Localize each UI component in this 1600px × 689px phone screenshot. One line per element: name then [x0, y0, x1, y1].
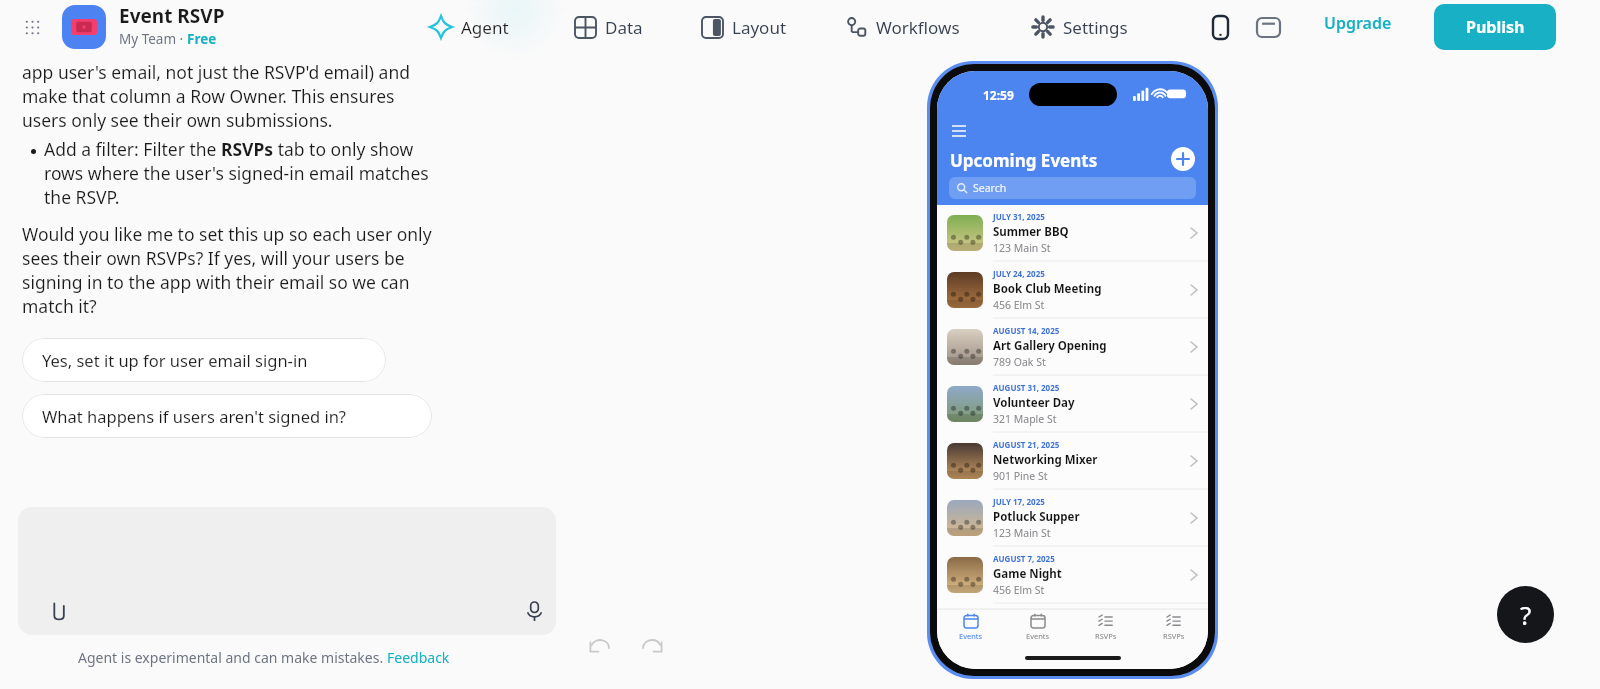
- staticText: 12:59: [983, 87, 1014, 103]
- staticText: AUGUST 7, 2025: [993, 553, 1055, 564]
- staticText: make that column a Row Owner. This ensur…: [22, 84, 395, 108]
- staticText: sees their own RSVPs? If yes, will your …: [22, 246, 405, 270]
- staticText: app user's email, not just the RSVP'd em…: [22, 60, 411, 84]
- button[interactable]: Phone preview: [1203, 10, 1237, 44]
- button[interactable]: Feedback: [387, 648, 450, 667]
- staticText: RSVPs: [1163, 631, 1185, 641]
- button[interactable]: Workflows: [840, 6, 966, 48]
- button[interactable]: JULY 24, 2025: [937, 262, 1208, 319]
- staticText: Agent: [461, 16, 509, 39]
- staticText: Upcoming Events: [950, 149, 1098, 172]
- staticText: Layout: [732, 16, 787, 39]
- staticText: Game Night: [993, 566, 1062, 582]
- staticText: Free: [187, 30, 217, 48]
- button[interactable]: Agent: [424, 6, 515, 48]
- staticText: Yes, set it up for user email sign-in: [42, 349, 308, 371]
- staticText: 901 Pine St: [993, 469, 1048, 483]
- button[interactable]: Apps: [16, 11, 48, 43]
- staticText: Agent is experimental and can make mista…: [78, 648, 387, 667]
- staticText: AUGUST 31, 2025: [993, 382, 1060, 393]
- button[interactable]: Voice input: [518, 595, 550, 627]
- staticText: rows where the user's signed-in email ma…: [44, 161, 429, 185]
- staticText: Events: [1026, 631, 1050, 641]
- staticText: AUGUST 21, 2025: [993, 439, 1060, 450]
- button[interactable]: RSVPs: [1140, 613, 1208, 641]
- staticText: match it?: [22, 294, 97, 318]
- staticText: Art Gallery Opening: [993, 338, 1107, 354]
- button[interactable]: Undo: [582, 628, 618, 664]
- button[interactable]: What happens if users aren't signed in?: [22, 394, 432, 438]
- staticText: signing in to the app with their email s…: [22, 270, 410, 294]
- staticText: My Team ·: [119, 30, 187, 48]
- button[interactable]: AUGUST 31, 2025: [937, 376, 1208, 433]
- button[interactable]: JULY 31, 2025: [937, 205, 1208, 262]
- staticText: users only see their own submissions.: [22, 108, 333, 132]
- button[interactable]: Redo: [634, 628, 670, 664]
- button[interactable]: AUGUST 14, 2025: [937, 319, 1208, 376]
- button[interactable]: App icon: [62, 5, 106, 49]
- button[interactable]: Yes, set it up for user email sign-in: [22, 338, 386, 382]
- staticText: Data: [605, 16, 643, 39]
- staticText: Workflows: [876, 16, 960, 39]
- button[interactable]: RSVPs: [1072, 613, 1140, 641]
- staticText: Add a filter: Filter the RSVPs tab to on…: [44, 137, 414, 161]
- staticText: Book Club Meeting: [993, 281, 1102, 297]
- button[interactable]: Menu: [945, 117, 973, 145]
- button[interactable]: Add event: [1171, 147, 1195, 171]
- staticText: RSVPs: [1095, 631, 1117, 641]
- button[interactable]: Search: [949, 177, 1196, 199]
- button[interactable]: JULY 17, 2025: [937, 490, 1208, 547]
- staticText: Volunteer Day: [993, 395, 1075, 411]
- staticText: Upgrade: [1324, 12, 1392, 34]
- staticText: Settings: [1063, 16, 1128, 39]
- button[interactable]: Settings: [1026, 6, 1134, 48]
- staticText: 123 Main St: [993, 241, 1051, 255]
- staticText: Publish: [1466, 16, 1525, 38]
- staticText: 123 Main St: [993, 526, 1051, 540]
- staticText: Feedback: [387, 648, 450, 667]
- staticText: 456 Elm St: [993, 298, 1045, 312]
- staticText: JULY 17, 2025: [993, 496, 1045, 507]
- staticText: ?: [1520, 597, 1532, 632]
- staticText: Event RSVP: [119, 3, 225, 29]
- button[interactable]: Attach file: [18, 507, 556, 635]
- staticText: Networking Mixer: [993, 452, 1098, 468]
- staticText: the RSVP.: [44, 185, 120, 209]
- button[interactable]: Data: [569, 6, 649, 48]
- staticText: 456 Elm St: [993, 583, 1045, 597]
- staticText: Summer BBQ: [993, 224, 1069, 240]
- staticText: AUGUST 14, 2025: [993, 325, 1060, 336]
- staticText: 789 Oak St: [993, 355, 1046, 369]
- staticText: What happens if users aren't signed in?: [42, 405, 347, 427]
- button[interactable]: Events: [937, 613, 1004, 641]
- staticText: 321 Maple St: [993, 412, 1057, 426]
- staticText: Would you like me to set this up so each…: [22, 222, 432, 246]
- staticText: JULY 24, 2025: [993, 268, 1045, 279]
- button[interactable]: AUGUST 7, 2025: [937, 547, 1208, 604]
- button[interactable]: Events: [1004, 613, 1072, 641]
- button[interactable]: Publish: [1434, 4, 1556, 50]
- button[interactable]: Tablet preview: [1251, 10, 1285, 44]
- staticText: Events: [959, 631, 983, 641]
- button[interactable]: Help: [1497, 586, 1554, 643]
- staticText: JULY 31, 2025: [993, 211, 1045, 222]
- button[interactable]: Upgrade: [1324, 12, 1392, 34]
- button[interactable]: Layout: [696, 6, 793, 48]
- button[interactable]: Attach file: [42, 595, 74, 627]
- staticText: Search: [973, 181, 1007, 195]
- staticText: Potluck Supper: [993, 509, 1080, 525]
- button[interactable]: AUGUST 21, 2025: [937, 433, 1208, 490]
